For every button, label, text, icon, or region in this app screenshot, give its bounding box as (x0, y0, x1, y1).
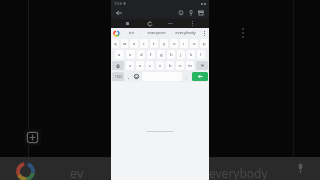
button[interactable]: t (150, 39, 158, 48)
button[interactable]: Comma (125, 71, 132, 82)
button[interactable]: a (115, 50, 124, 59)
staticText: y (163, 41, 166, 47)
staticText: m (188, 63, 192, 69)
button[interactable]: q (112, 39, 119, 48)
button[interactable]: Emoji (132, 71, 141, 82)
staticText: ?123 (115, 75, 122, 79)
button[interactable]: c (146, 61, 154, 70)
staticText: i (183, 41, 185, 47)
button[interactable]: x (136, 61, 144, 70)
button[interactable]: ?123 (112, 72, 124, 81)
button[interactable]: Recents (123, 19, 132, 28)
staticText: c (149, 63, 152, 69)
staticText: p (203, 41, 206, 47)
staticText: d (140, 52, 143, 58)
button[interactable]: r (140, 39, 148, 48)
staticText: w (123, 41, 127, 47)
staticText: b (169, 63, 172, 69)
button[interactable]: Period (183, 71, 191, 82)
staticText: q (114, 41, 117, 47)
button[interactable]: everyone (142, 28, 171, 38)
staticText: f (150, 52, 152, 58)
button[interactable]: v (156, 61, 164, 70)
staticText: ev (70, 164, 84, 180)
button[interactable]: Back (114, 8, 124, 18)
staticText: everybody (175, 30, 196, 36)
button[interactable]: z (126, 61, 134, 70)
button[interactable]: k (187, 50, 195, 59)
button[interactable]: Pin note (186, 8, 196, 18)
staticText: a (118, 52, 121, 58)
staticText: everybody (209, 165, 268, 180)
staticText: 7:56 (114, 1, 122, 6)
staticText: e (133, 41, 136, 47)
button[interactable]: i (180, 39, 188, 48)
staticText: z (129, 63, 131, 69)
button[interactable]: More options (188, 19, 197, 28)
button[interactable]: Backspace (196, 61, 208, 70)
staticText: s (129, 52, 132, 58)
staticText: t (153, 41, 155, 47)
button[interactable]: l (197, 50, 205, 59)
staticText: v (159, 63, 162, 69)
staticText: n (179, 63, 182, 69)
button[interactable]: b (166, 61, 174, 70)
button[interactable]: f (147, 50, 155, 59)
button[interactable]: m (186, 61, 194, 70)
staticText: x (139, 63, 142, 69)
staticText: , (128, 74, 130, 80)
button[interactable]: n (176, 61, 184, 70)
button[interactable]: u (170, 39, 178, 48)
button[interactable]: y (160, 39, 168, 48)
button[interactable]: Archive (196, 8, 206, 18)
staticText: everyone (147, 30, 166, 36)
staticText: r (143, 41, 145, 47)
staticText: en (129, 30, 134, 36)
button[interactable]: en (121, 28, 142, 38)
button[interactable]: Enter (192, 72, 208, 81)
button[interactable]: w (121, 39, 128, 48)
button[interactable]: d (137, 50, 145, 59)
button[interactable]: p (200, 39, 208, 48)
staticText: u (173, 41, 176, 47)
button[interactable]: h (167, 50, 175, 59)
staticText: g (160, 52, 163, 58)
staticText: j (180, 52, 182, 58)
button[interactable]: Undo (145, 19, 154, 28)
staticText: o (193, 41, 196, 47)
button[interactable]: o (190, 39, 198, 48)
staticText: . (186, 74, 188, 80)
button[interactable]: More suggestions (200, 28, 209, 38)
button[interactable]: g (157, 50, 165, 59)
staticText: k (190, 52, 193, 58)
staticText: l (200, 52, 202, 58)
button[interactable]: Redo (166, 19, 175, 28)
button[interactable]: Reminder (176, 8, 186, 18)
button[interactable]: Google (111, 28, 121, 38)
button[interactable]: j (177, 50, 185, 59)
button[interactable]: everybody (171, 28, 200, 38)
button[interactable]: e (130, 39, 138, 48)
button[interactable]: Shift (112, 61, 124, 70)
staticText: h (170, 52, 173, 58)
button[interactable]: s (126, 50, 135, 59)
